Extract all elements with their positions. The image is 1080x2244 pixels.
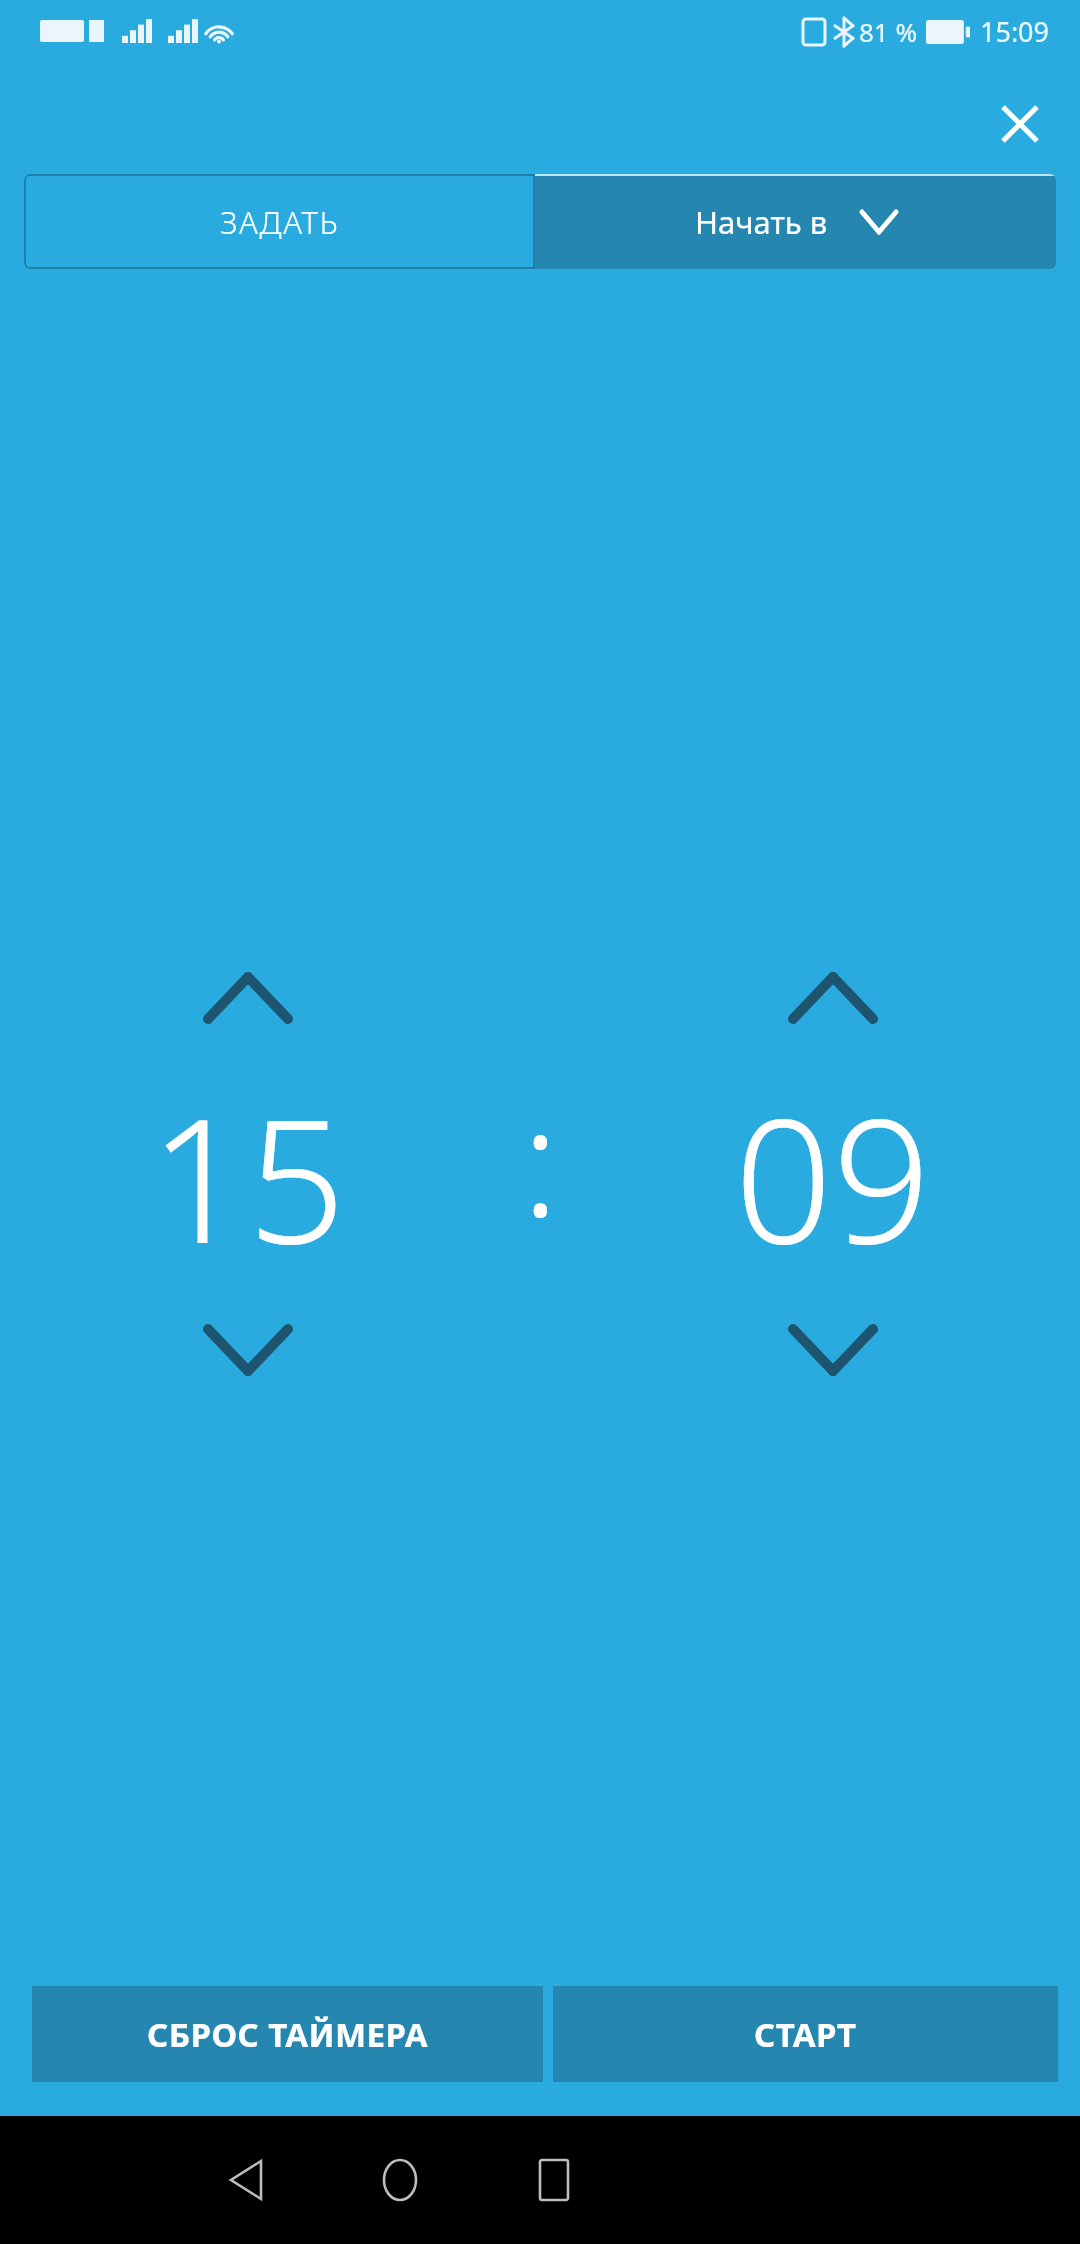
staticText: СТАРТ	[754, 2012, 857, 2057]
button[interactable]: Recents	[506, 2132, 602, 2228]
staticText: 15:09	[980, 13, 1050, 50]
button[interactable]: Back	[198, 2132, 294, 2228]
button[interactable]: Начать в	[535, 174, 1056, 269]
button[interactable]: Decrease 09	[758, 1313, 908, 1387]
staticText: Начать в	[695, 201, 828, 243]
staticText: 09	[734, 1059, 931, 1293]
button[interactable]: Increase 15	[173, 961, 323, 1035]
button[interactable]: СБРОС ТАЙМЕРА	[32, 1986, 543, 2082]
staticText: ЗАДАТЬ	[220, 201, 340, 243]
button[interactable]: ЗАДАТЬ	[24, 174, 535, 269]
staticText: 15	[149, 1059, 346, 1293]
button[interactable]: Increase 09	[758, 961, 908, 1035]
button[interactable]: Close	[984, 88, 1056, 160]
button[interactable]: Decrease 15	[173, 1313, 323, 1387]
button[interactable]: СТАРТ	[553, 1986, 1058, 2082]
staticText: СБРОС ТАЙМЕРА	[147, 2012, 429, 2057]
button[interactable]: Home	[352, 2132, 448, 2228]
staticText: 81 %	[859, 14, 918, 49]
staticText: :	[522, 1056, 559, 1260]
